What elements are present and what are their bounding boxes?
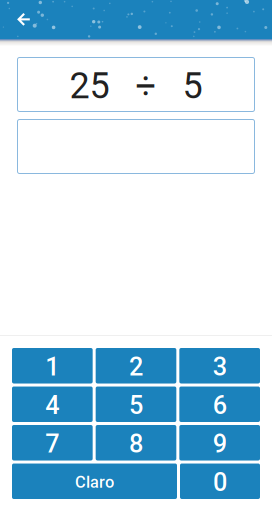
staticText: 2 — [129, 352, 143, 382]
button[interactable]: 9 — [179, 425, 260, 460]
button[interactable]: Back — [0, 0, 46, 39]
staticText: 9 — [213, 429, 227, 459]
staticText: 4 — [45, 390, 59, 420]
button[interactable]: 5 — [96, 386, 176, 422]
button[interactable]: 2 — [96, 348, 176, 383]
staticText: ÷ — [135, 65, 156, 107]
button[interactable]: 4 — [12, 386, 93, 422]
button[interactable]: 1 — [12, 348, 93, 383]
staticText: Claro — [75, 473, 114, 492]
button[interactable]: Claro — [12, 463, 177, 499]
button[interactable]: 6 — [179, 386, 260, 422]
staticText: 1 — [45, 352, 59, 382]
staticText: 3 — [213, 352, 227, 382]
staticText: 5 — [129, 390, 143, 420]
staticText: 5 — [182, 65, 202, 107]
button[interactable]: 8 — [96, 425, 176, 460]
button[interactable]: 3 — [179, 348, 260, 383]
staticText: 25 — [69, 65, 109, 107]
button[interactable]: 0 — [180, 463, 260, 499]
staticText: 6 — [213, 390, 227, 420]
staticText: 0 — [213, 467, 227, 497]
staticText: 7 — [45, 429, 59, 459]
staticText: 8 — [129, 429, 143, 459]
button[interactable]: 7 — [12, 425, 93, 460]
